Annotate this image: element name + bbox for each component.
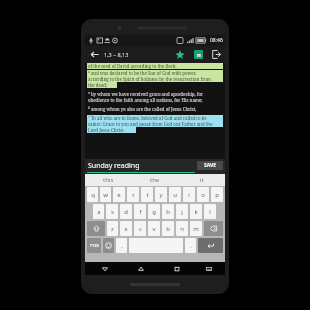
staticText: ⁶ among whom ye also are the called of J… bbox=[88, 106, 197, 112]
button[interactable]: h bbox=[162, 204, 174, 219]
button[interactable]: j bbox=[176, 204, 188, 219]
button[interactable]: it bbox=[178, 174, 225, 186]
button[interactable]: r bbox=[127, 187, 139, 202]
staticText: according to the Spirit of holiness by t… bbox=[88, 76, 211, 82]
staticText: z bbox=[111, 225, 114, 233]
button[interactable]: g bbox=[148, 204, 160, 219]
staticText: w bbox=[103, 191, 108, 199]
staticText: i bbox=[188, 191, 190, 199]
button[interactable]: a bbox=[93, 204, 104, 219]
staticText: 1,3 – 8,13 bbox=[104, 51, 129, 58]
staticText: q bbox=[91, 191, 95, 199]
staticText: l bbox=[209, 208, 211, 216]
button[interactable]: the bbox=[131, 174, 178, 186]
button[interactable]: e bbox=[113, 187, 125, 202]
staticText: it bbox=[200, 176, 204, 184]
button[interactable]: , bbox=[116, 238, 127, 253]
button[interactable]: Back bbox=[85, 46, 103, 63]
button[interactable]: u bbox=[169, 187, 181, 202]
staticText: ⁵ by whom we have received grace and apo… bbox=[88, 91, 204, 97]
staticText: f bbox=[139, 208, 142, 216]
button[interactable]: Shift bbox=[87, 221, 105, 236]
staticText: c bbox=[139, 225, 142, 233]
button[interactable]: Sunday reading bbox=[85, 159, 197, 172]
staticText: k bbox=[194, 208, 198, 216]
staticText: Lord Jesus Christ. bbox=[88, 127, 125, 133]
button[interactable]: Recents bbox=[169, 262, 185, 275]
staticText: r bbox=[132, 191, 135, 199]
staticText: m bbox=[193, 225, 199, 233]
button[interactable]: q bbox=[87, 187, 98, 202]
staticText: u bbox=[173, 191, 177, 199]
staticText: SAVE bbox=[204, 162, 217, 169]
staticText: o bbox=[201, 191, 205, 199]
staticText: n bbox=[197, 51, 201, 59]
staticText: t bbox=[146, 191, 149, 199]
button[interactable]: Notes bbox=[189, 46, 207, 63]
button[interactable]: Backspace bbox=[204, 221, 223, 236]
staticText: a bbox=[97, 208, 101, 216]
button[interactable]: SAVE bbox=[197, 161, 223, 170]
staticText: the bbox=[150, 176, 160, 184]
staticText: Sunday reading bbox=[88, 161, 140, 171]
staticText: ⁴ and was declared to be the Son of God … bbox=[88, 70, 197, 76]
staticText: the dead; bbox=[88, 82, 108, 88]
button[interactable]: i bbox=[183, 187, 195, 202]
button[interactable]: y bbox=[155, 187, 167, 202]
staticText: ?123 bbox=[90, 243, 99, 248]
staticText: y bbox=[159, 191, 163, 199]
button[interactable]: Keyboard bbox=[201, 262, 217, 275]
staticText: 08:46 bbox=[210, 37, 223, 44]
staticText: v bbox=[152, 225, 156, 233]
button[interactable]: c bbox=[134, 221, 146, 236]
button[interactable]: b bbox=[162, 221, 174, 236]
button[interactable]: Enter bbox=[198, 238, 223, 253]
staticText: saints: Grace to you and peace from God … bbox=[88, 121, 213, 127]
staticText: g bbox=[152, 208, 156, 216]
staticText: h bbox=[166, 208, 170, 216]
button[interactable]: Exit bbox=[207, 46, 225, 63]
staticText: of the seed of David according to the fl… bbox=[88, 63, 177, 69]
button[interactable]: Back bbox=[97, 262, 113, 275]
button[interactable]: v bbox=[148, 221, 160, 236]
button[interactable]: this bbox=[85, 174, 131, 186]
staticText: p bbox=[215, 191, 219, 199]
staticText: b bbox=[166, 225, 170, 233]
staticText: s bbox=[111, 208, 114, 216]
staticText: n bbox=[180, 225, 184, 233]
button[interactable]: s bbox=[106, 204, 118, 219]
button[interactable]: f bbox=[134, 204, 146, 219]
button[interactable]: o bbox=[197, 187, 209, 202]
button[interactable]: n bbox=[176, 221, 188, 236]
button[interactable]: t bbox=[141, 187, 153, 202]
button[interactable]: p bbox=[211, 187, 223, 202]
button[interactable]: Home bbox=[133, 262, 149, 275]
button[interactable]: d bbox=[120, 204, 132, 219]
button[interactable]: x bbox=[120, 221, 132, 236]
staticText: ⁷ To all who are in Rome, beloved of God… bbox=[88, 115, 207, 121]
staticText: x bbox=[124, 225, 128, 233]
button[interactable]: l bbox=[204, 204, 216, 219]
button[interactable]: m bbox=[190, 221, 202, 236]
button[interactable]: Bookmark bbox=[171, 46, 189, 63]
staticText: this bbox=[103, 176, 114, 184]
staticText: . bbox=[190, 242, 192, 250]
button[interactable]: k bbox=[190, 204, 202, 219]
button[interactable]: w bbox=[100, 187, 111, 202]
staticText: , bbox=[121, 242, 123, 250]
staticText: j bbox=[181, 208, 183, 216]
button[interactable]: Emoji bbox=[103, 238, 114, 253]
button[interactable]: z bbox=[107, 221, 118, 236]
button[interactable]: . bbox=[185, 238, 196, 253]
staticText: d bbox=[124, 208, 128, 216]
staticText: obedience to the faith among all nations… bbox=[88, 97, 203, 103]
staticText: e bbox=[117, 191, 121, 199]
button[interactable]: ?123 bbox=[87, 238, 101, 253]
